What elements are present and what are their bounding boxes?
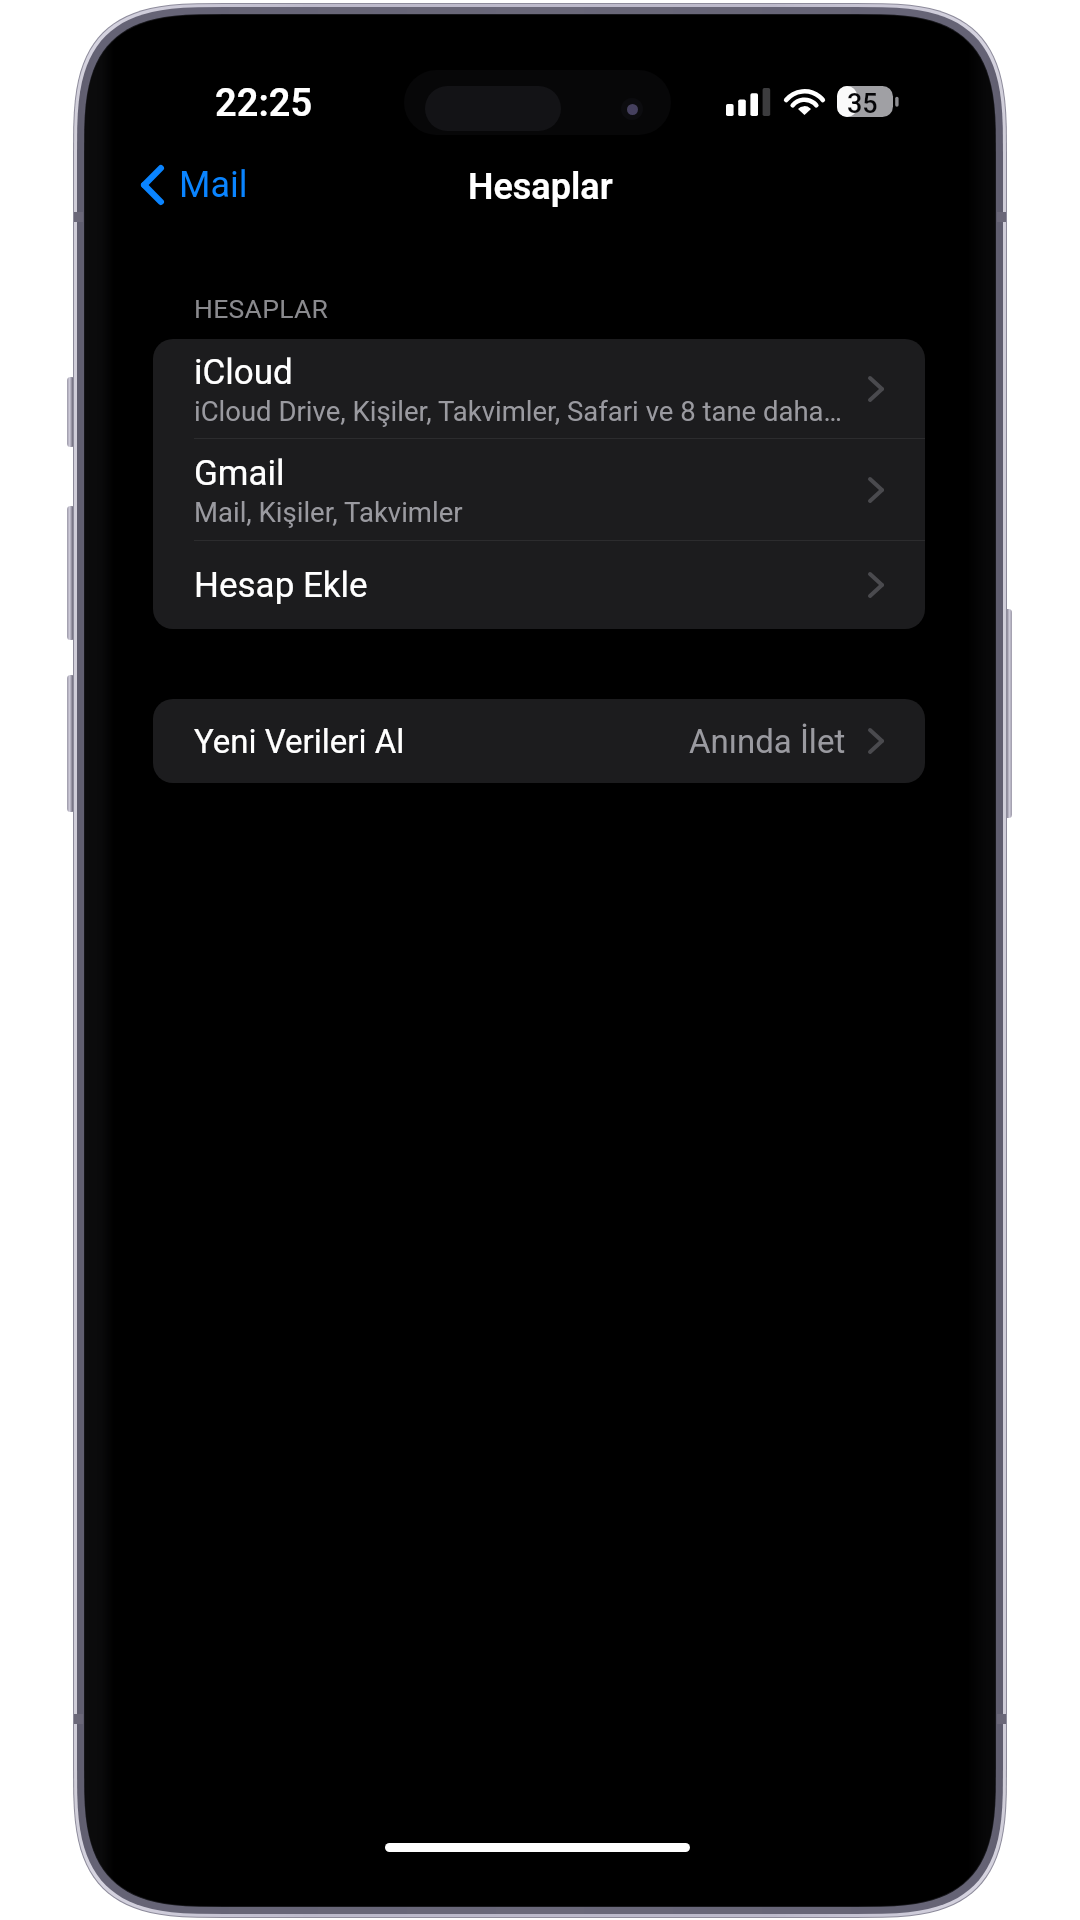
staticText: HESAPLAR — [194, 293, 329, 324]
staticText: Mail, Kişiler, Takvimler — [194, 496, 463, 528]
staticText: Hesap Ekle — [194, 565, 368, 606]
button[interactable]: Yeni Verileri Al — [153, 699, 925, 783]
staticText: iCloud Drive, Kişiler, Takvimler, Safari… — [194, 395, 842, 427]
button[interactable]: Hesap Ekle — [153, 541, 925, 629]
button[interactable]: Gmail — [153, 439, 925, 541]
button[interactable]: Back to Mail — [123, 153, 266, 217]
staticText: 35 — [847, 88, 878, 119]
staticText: Hesaplar — [468, 166, 613, 208]
staticText: 22:25 — [215, 81, 313, 126]
staticText: iCloud — [194, 352, 293, 393]
staticText: Anında İlet — [689, 722, 846, 761]
staticText: Mail — [179, 164, 248, 206]
staticText: Gmail — [194, 453, 285, 494]
button[interactable]: iCloud — [153, 339, 925, 439]
staticText: Yeni Verileri Al — [194, 722, 405, 761]
